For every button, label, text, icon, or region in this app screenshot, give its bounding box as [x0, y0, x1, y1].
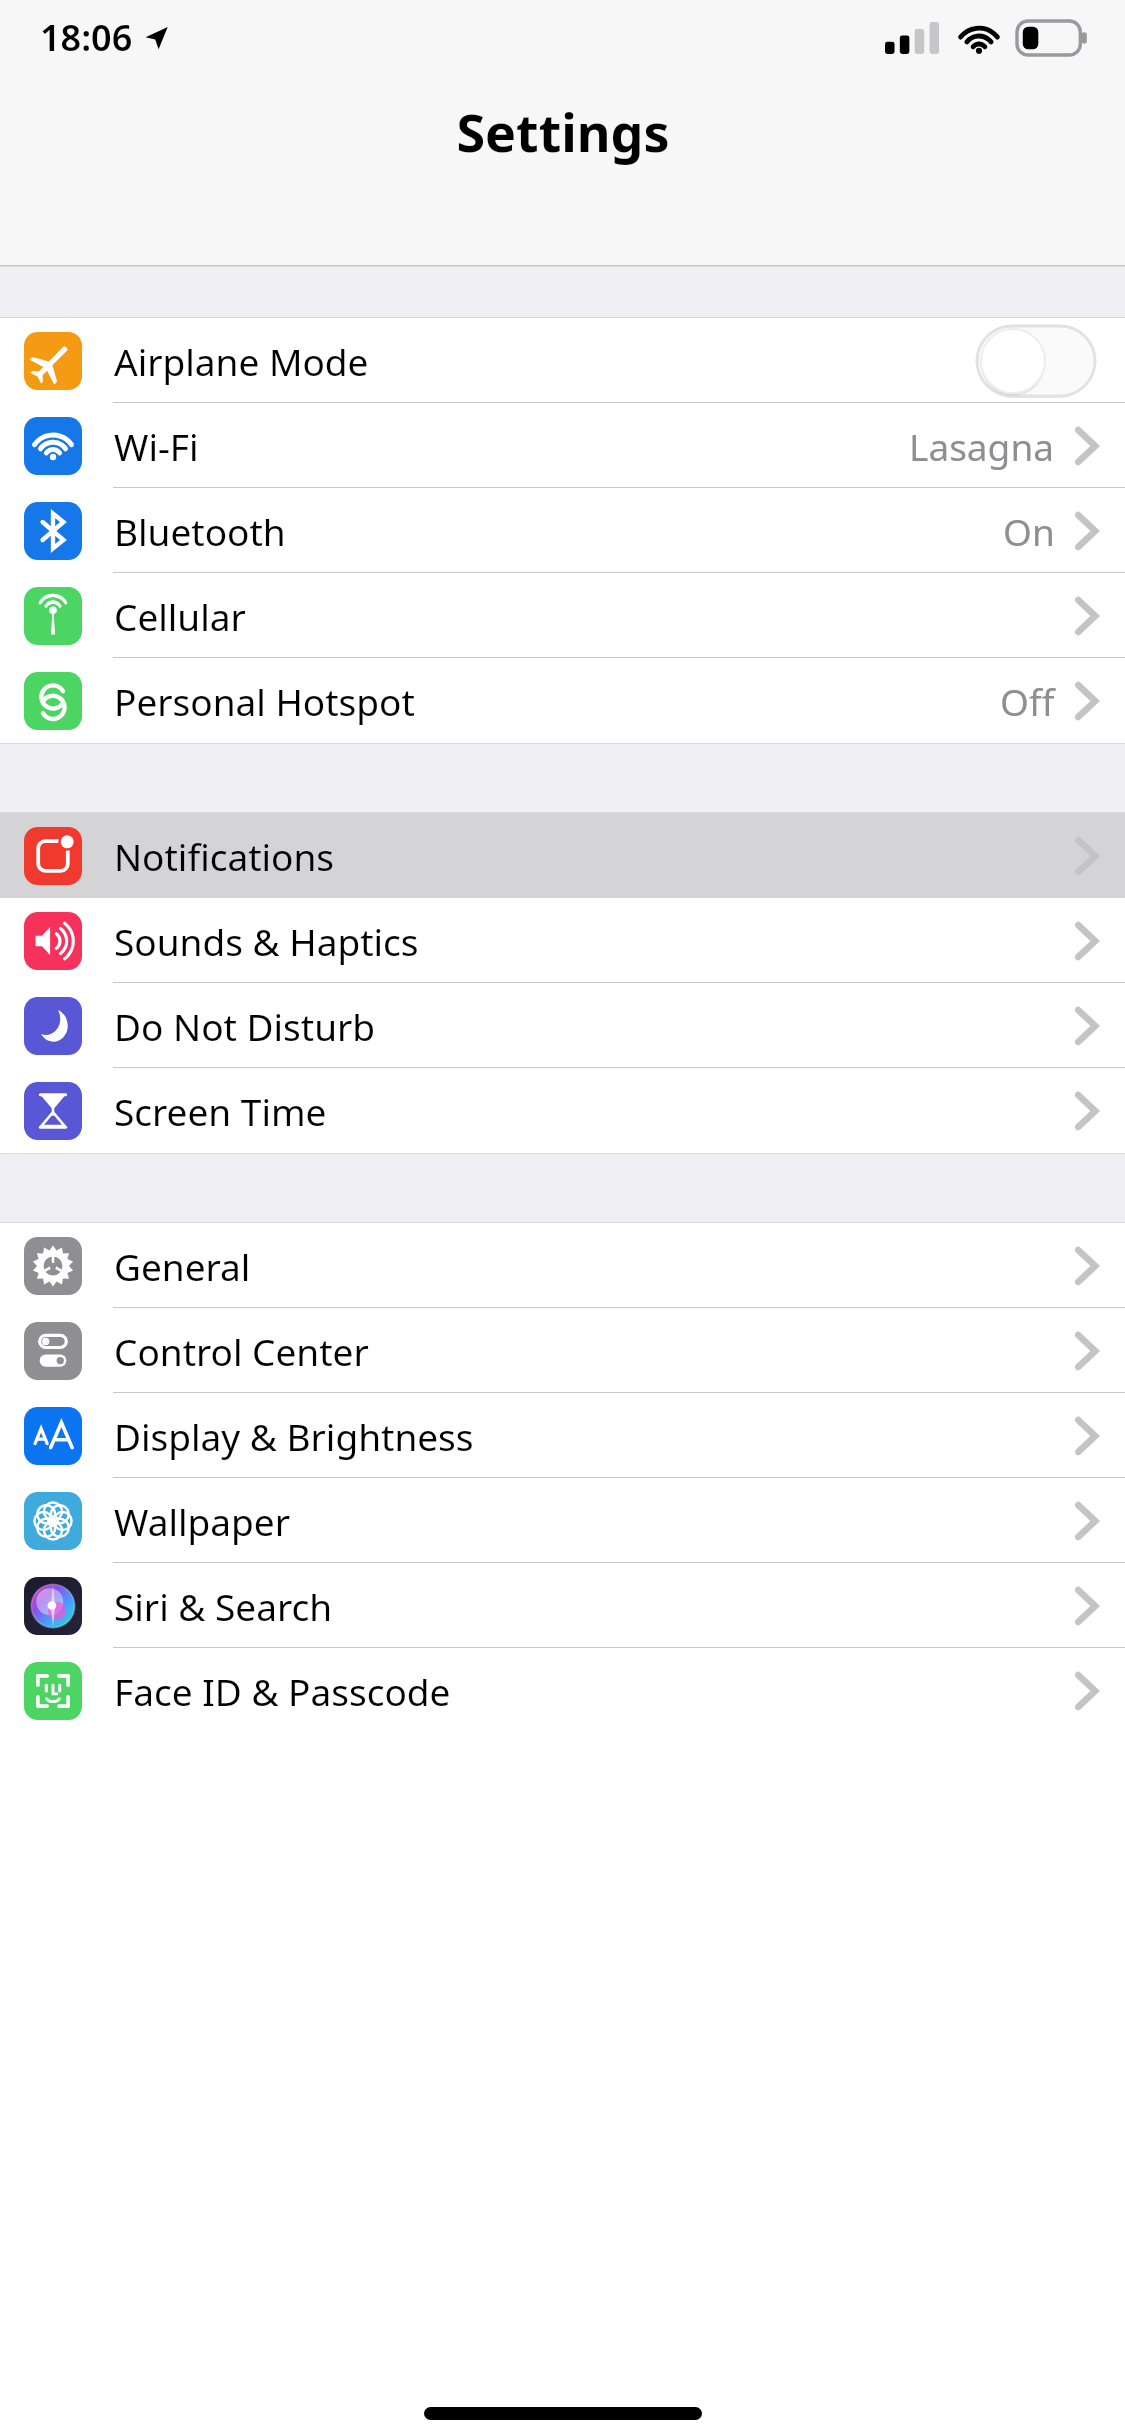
- button[interactable]: Do Not Disturb: [0, 983, 1125, 1068]
- button[interactable]: Cellular: [0, 573, 1125, 658]
- staticText: Cellular: [114, 591, 246, 641]
- staticText: Sounds & Haptics: [114, 916, 419, 966]
- staticText: Personal Hotspot: [114, 676, 415, 726]
- staticText: Siri & Search: [114, 1581, 333, 1631]
- staticText: Wi-Fi: [114, 421, 199, 471]
- staticText: Notifications: [114, 831, 335, 881]
- button[interactable]: General: [0, 1223, 1125, 1308]
- staticText: Off: [1000, 676, 1055, 726]
- staticText: On: [1003, 506, 1055, 556]
- staticText: Do Not Disturb: [114, 1001, 376, 1051]
- button[interactable]: Airplane Mode: [0, 318, 1125, 403]
- staticText: Lasagna: [909, 421, 1055, 471]
- button[interactable]: Siri & Search: [0, 1563, 1125, 1648]
- button[interactable]: Sounds & Haptics: [0, 898, 1125, 983]
- staticText: Control Center: [114, 1326, 369, 1376]
- staticText: Display & Brightness: [114, 1411, 474, 1461]
- button[interactable]: Wi-Fi: [0, 403, 1125, 488]
- button[interactable]: Notifications: [0, 813, 1125, 898]
- button[interactable]: Wallpaper: [0, 1478, 1125, 1563]
- button[interactable]: Screen Time: [0, 1068, 1125, 1153]
- staticText: General: [114, 1241, 251, 1291]
- staticText: Face ID & Passcode: [114, 1666, 451, 1716]
- button[interactable]: Bluetooth: [0, 488, 1125, 573]
- button[interactable]: Face ID & Passcode: [0, 1648, 1125, 1733]
- staticText: Bluetooth: [114, 506, 286, 556]
- button[interactable]: Control Center: [0, 1308, 1125, 1393]
- button[interactable]: Display & Brightness: [0, 1393, 1125, 1478]
- staticText: Settings: [456, 96, 670, 167]
- staticText: 18:06: [40, 13, 133, 62]
- staticText: Airplane Mode: [114, 336, 369, 386]
- button[interactable]: Personal Hotspot: [0, 658, 1125, 743]
- staticText: Screen Time: [114, 1086, 327, 1136]
- staticText: Wallpaper: [114, 1496, 290, 1546]
